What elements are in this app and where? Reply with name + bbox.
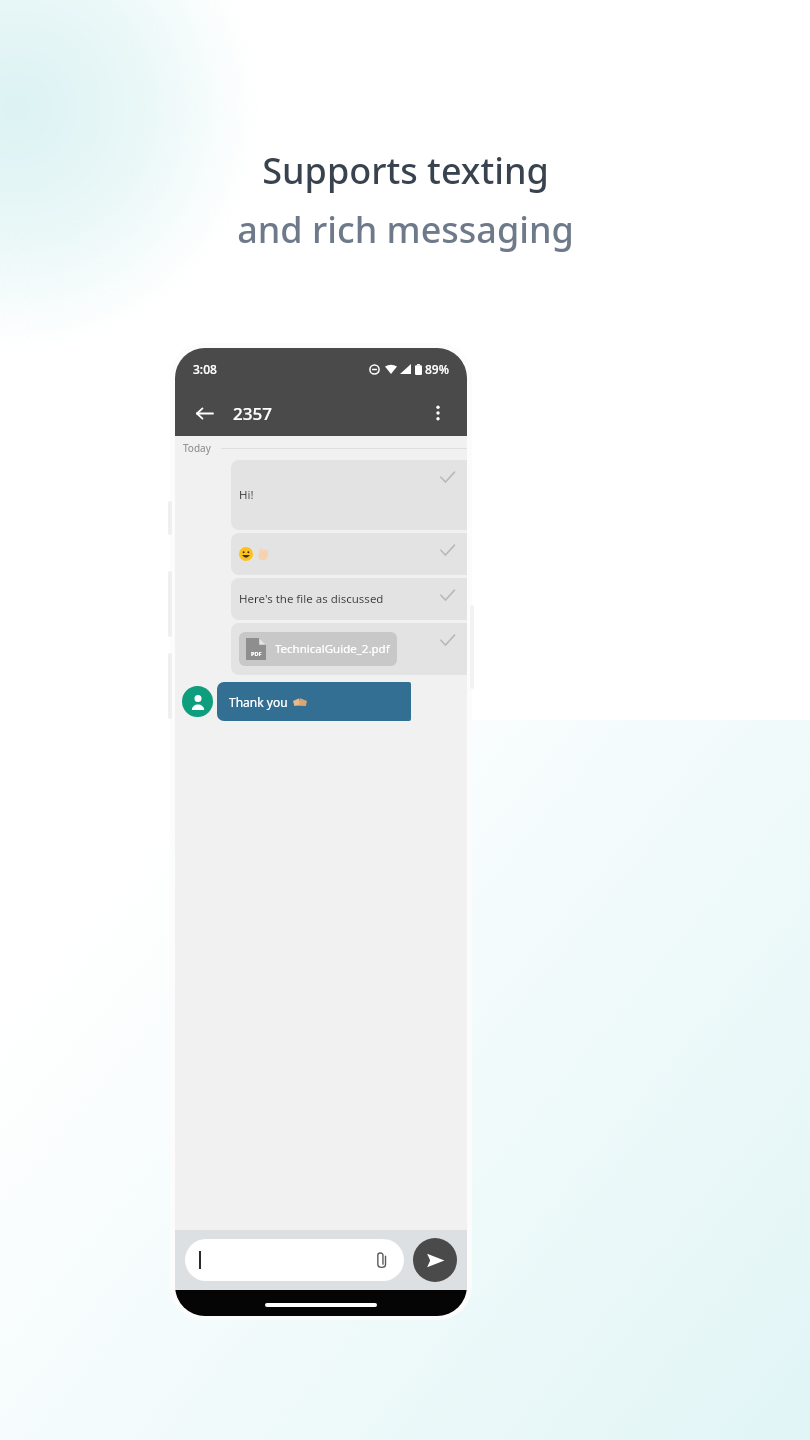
button[interactable]: Attach file: [185, 1239, 404, 1281]
staticText: and rich messaging: [237, 205, 574, 254]
button[interactable]: PDF: [239, 632, 397, 666]
button[interactable]: Hi!: [231, 460, 467, 530]
staticText: 89%: [425, 361, 449, 377]
button[interactable]: More options: [423, 398, 453, 428]
staticText: 3:08: [193, 361, 217, 377]
staticText: Here's the file as discussed: [239, 591, 384, 607]
staticText: Today: [183, 441, 211, 455]
button[interactable]: Here's the file as discussed: [231, 578, 467, 620]
staticText: TechnicalGuide_2.pdf: [275, 641, 390, 657]
staticText: Hi!: [239, 487, 254, 503]
button[interactable]: Send: [413, 1238, 457, 1282]
staticText: Supports texting: [262, 146, 549, 195]
button[interactable]: Back: [189, 398, 219, 428]
button[interactable]: Attach file: [372, 1250, 392, 1270]
button[interactable]: [231, 533, 467, 575]
staticText: PDF: [251, 650, 262, 657]
button[interactable]: PDF: [231, 623, 467, 675]
staticText: Thank you: [229, 694, 288, 710]
staticText: 2357: [233, 402, 272, 425]
button[interactable]: Thank you: [217, 682, 411, 721]
